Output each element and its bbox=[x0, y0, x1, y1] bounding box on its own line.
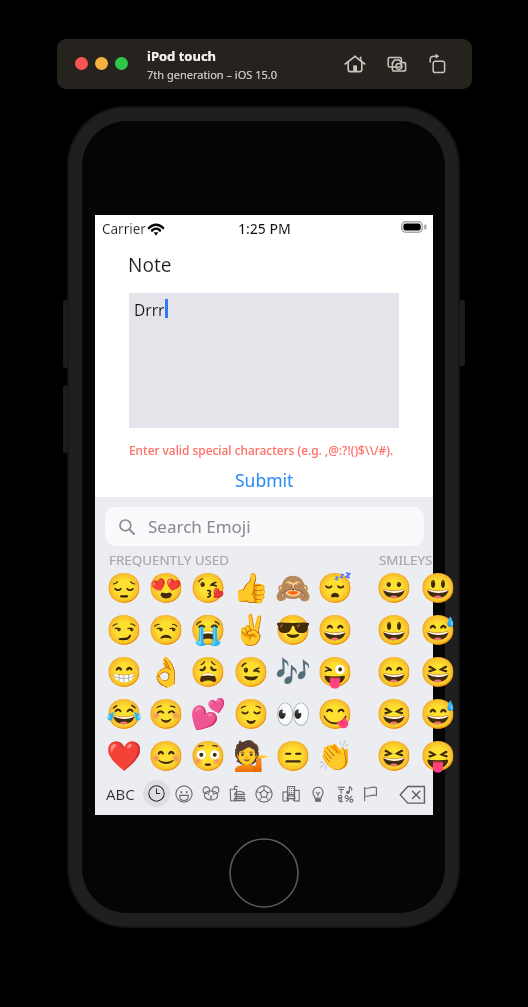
button[interactable]: 😃 bbox=[376, 612, 412, 648]
staticText: 😍 bbox=[148, 571, 184, 605]
staticText: 😜 bbox=[317, 655, 353, 689]
staticText: 😌 bbox=[233, 697, 269, 731]
staticText: 💁 bbox=[233, 739, 269, 773]
staticText: ❤️ bbox=[106, 739, 142, 773]
button[interactable]: 😜 bbox=[317, 654, 353, 690]
button[interactable]: 😄 bbox=[317, 612, 353, 648]
button[interactable]: 🙈 bbox=[275, 570, 311, 606]
staticText: FREQUENTLY USED bbox=[109, 551, 230, 569]
button[interactable]: 😎 bbox=[275, 612, 311, 648]
button[interactable]: Objects bbox=[304, 780, 332, 808]
button[interactable]: 😅 bbox=[420, 696, 456, 732]
staticText: 😃 bbox=[376, 613, 412, 647]
staticText: Carrier bbox=[102, 220, 146, 238]
staticText: 😉 bbox=[233, 655, 269, 689]
staticText: Note bbox=[128, 252, 172, 278]
button[interactable]: 😘 bbox=[190, 570, 226, 606]
button[interactable]: Activity bbox=[250, 780, 278, 808]
staticText: 😅 bbox=[420, 697, 456, 731]
staticText: 😂 bbox=[106, 697, 142, 731]
button[interactable]: 😅 bbox=[420, 612, 456, 648]
button[interactable]: 👌 bbox=[148, 654, 184, 690]
button[interactable]: Delete bbox=[395, 782, 430, 807]
staticText: 😎 bbox=[275, 613, 311, 647]
button[interactable]: Flags bbox=[357, 780, 385, 808]
button[interactable]: 😭 bbox=[190, 612, 226, 648]
staticText: Drrr bbox=[134, 299, 165, 320]
button[interactable]: 😑 bbox=[275, 738, 311, 774]
button[interactable]: Drrr bbox=[129, 293, 399, 428]
button[interactable]: ☺️ bbox=[148, 696, 184, 732]
button[interactable]: Maximize bbox=[115, 57, 128, 70]
button[interactable]: 😒 bbox=[148, 612, 184, 648]
button[interactable]: 👏 bbox=[317, 738, 353, 774]
button[interactable]: Share bbox=[425, 52, 449, 76]
staticText: 😔 bbox=[106, 571, 142, 605]
staticText: 😳 bbox=[190, 739, 226, 773]
button[interactable]: 👍 bbox=[233, 570, 269, 606]
staticText: 😃 bbox=[420, 571, 456, 605]
button[interactable]: Screenshot bbox=[385, 52, 409, 76]
staticText: 🎶 bbox=[275, 655, 311, 689]
staticText: Search Emoji bbox=[148, 515, 251, 538]
button[interactable]: Search Emoji bbox=[105, 507, 424, 546]
staticText: 😁 bbox=[106, 655, 142, 689]
staticText: 😘 bbox=[190, 571, 226, 605]
button[interactable]: Symbols bbox=[331, 780, 359, 808]
button[interactable]: Food bbox=[223, 780, 251, 808]
button[interactable]: 😳 bbox=[190, 738, 226, 774]
button[interactable]: 😔 bbox=[106, 570, 142, 606]
button[interactable]: 👀 bbox=[275, 696, 311, 732]
button[interactable]: 😋 bbox=[317, 696, 353, 732]
button[interactable]: 😌 bbox=[233, 696, 269, 732]
button[interactable]: Home bbox=[343, 52, 367, 76]
staticText: 😏 bbox=[106, 613, 142, 647]
staticText: 7th generation – iOS 15.0 bbox=[147, 67, 278, 82]
staticText: 1:25 PM bbox=[238, 219, 291, 238]
staticText: 😄 bbox=[376, 655, 412, 689]
button[interactable]: 😏 bbox=[106, 612, 142, 648]
button[interactable]: Animals bbox=[197, 780, 225, 808]
button[interactable]: Recently used bbox=[143, 780, 170, 807]
staticText: 😆 bbox=[420, 655, 456, 689]
button[interactable]: ABC bbox=[102, 782, 138, 806]
staticText: Enter valid special characters (e.g. ,@:… bbox=[129, 442, 394, 458]
staticText: 👏 bbox=[317, 739, 353, 773]
button[interactable]: Submit bbox=[95, 465, 433, 495]
button[interactable]: 😉 bbox=[233, 654, 269, 690]
button[interactable]: 😴 bbox=[317, 570, 353, 606]
button[interactable]: 😁 bbox=[106, 654, 142, 690]
staticText: iPod touch bbox=[147, 47, 217, 65]
staticText: 😑 bbox=[275, 739, 311, 773]
button[interactable]: 😝 bbox=[420, 738, 456, 774]
staticText: 🙈 bbox=[275, 571, 311, 605]
button[interactable]: 😆 bbox=[376, 696, 412, 732]
button[interactable]: ❤️ bbox=[106, 738, 142, 774]
button[interactable]: 😍 bbox=[148, 570, 184, 606]
staticText: 😄 bbox=[317, 613, 353, 647]
button[interactable]: 😊 bbox=[148, 738, 184, 774]
staticText: 👍 bbox=[233, 571, 269, 605]
button[interactable]: 😃 bbox=[420, 570, 456, 606]
button[interactable]: 💕 bbox=[190, 696, 226, 732]
button[interactable]: Smileys bbox=[170, 780, 198, 808]
staticText: SMILEYS bbox=[379, 551, 433, 569]
button[interactable]: 💁 bbox=[233, 738, 269, 774]
staticText: Submit bbox=[235, 468, 294, 492]
button[interactable]: 😆 bbox=[420, 654, 456, 690]
button[interactable]: Travel bbox=[277, 780, 305, 808]
button[interactable]: 😂 bbox=[106, 696, 142, 732]
button[interactable]: 🎶 bbox=[275, 654, 311, 690]
button[interactable]: 😀 bbox=[376, 570, 412, 606]
staticText: 😋 bbox=[317, 697, 353, 731]
button[interactable]: 😄 bbox=[376, 654, 412, 690]
staticText: 😴 bbox=[317, 571, 353, 605]
button[interactable]: Minimize bbox=[95, 57, 108, 70]
staticText: ✌️ bbox=[233, 613, 269, 647]
button[interactable]: ✌️ bbox=[233, 612, 269, 648]
button[interactable]: 😆 bbox=[376, 738, 412, 774]
staticText: 😆 bbox=[376, 697, 412, 731]
staticText: 👌 bbox=[148, 655, 184, 689]
button[interactable]: 😩 bbox=[190, 654, 226, 690]
button[interactable]: Close bbox=[75, 57, 88, 70]
